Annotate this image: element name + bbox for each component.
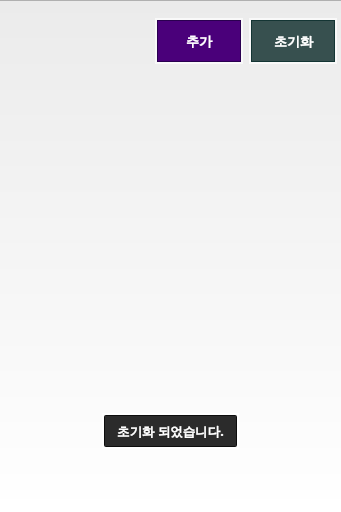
staticText: 초기화 되었습니다. bbox=[117, 423, 224, 440]
staticText: 추가 bbox=[186, 33, 212, 49]
button[interactable]: 초기화 bbox=[252, 21, 334, 61]
staticText: 초기화 bbox=[274, 33, 313, 49]
button[interactable]: 추가 bbox=[158, 21, 240, 61]
